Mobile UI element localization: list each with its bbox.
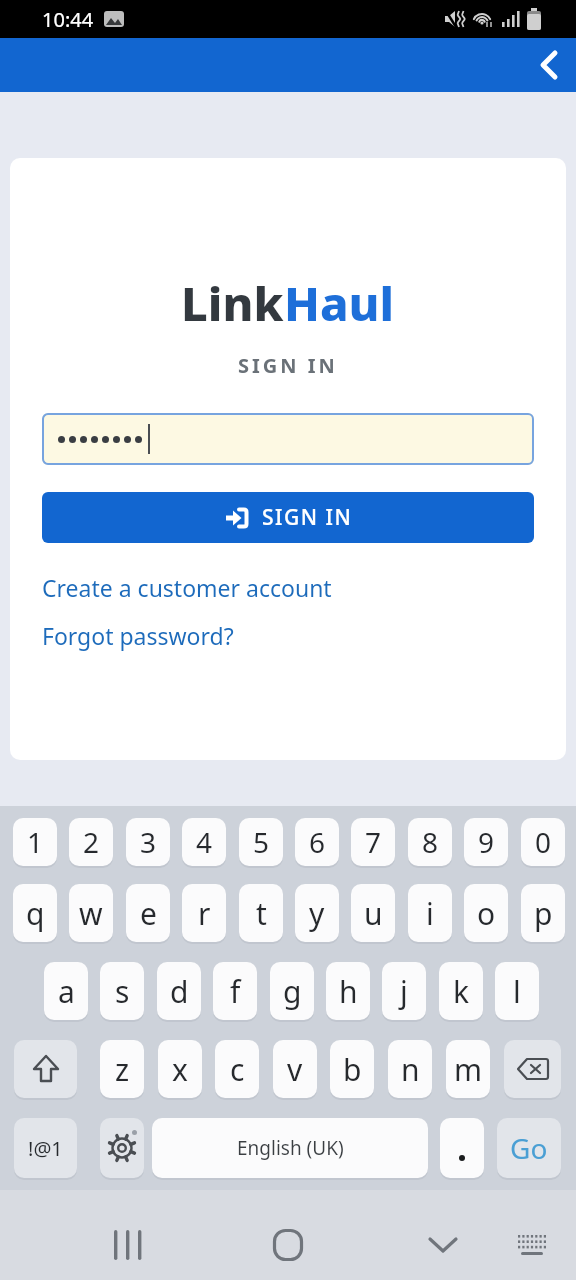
staticText: Forgot password? (42, 620, 234, 651)
staticText: y (309, 893, 325, 934)
button[interactable]: v (273, 1040, 317, 1098)
button[interactable]: 2 (69, 818, 113, 866)
staticText: c (230, 1049, 245, 1090)
button[interactable]: g (270, 962, 314, 1020)
staticText: i (426, 893, 434, 934)
staticText: n (401, 1049, 420, 1090)
staticText: 10:44 (42, 6, 94, 33)
button[interactable]: !@1 (14, 1118, 77, 1178)
button[interactable]: p (521, 884, 565, 942)
staticText: s (115, 971, 130, 1012)
button[interactable]: b (330, 1040, 374, 1098)
button[interactable]: o (464, 884, 508, 942)
button[interactable]: s (100, 962, 144, 1020)
staticText: 8 (422, 823, 439, 861)
staticText: 7 (365, 823, 382, 861)
button[interactable] (42, 413, 534, 465)
staticText: 2 (83, 823, 100, 861)
staticText: g (283, 971, 302, 1012)
button[interactable]: c (215, 1040, 259, 1098)
staticText: Haul (284, 271, 395, 335)
staticText: k (453, 971, 470, 1012)
staticText: 0 (535, 823, 552, 861)
button[interactable] (100, 1118, 144, 1178)
staticText: f (230, 971, 241, 1012)
staticText: e (140, 893, 157, 934)
staticText: b (343, 1049, 362, 1090)
button[interactable]: l (495, 962, 539, 1020)
staticText: SIGN IN (262, 503, 353, 532)
button[interactable]: a (44, 962, 88, 1020)
button[interactable]: x (158, 1040, 202, 1098)
staticText: 4 (196, 823, 213, 861)
button[interactable]: u (351, 884, 395, 942)
button[interactable]: m (446, 1040, 490, 1098)
button[interactable]: Forgot password? (42, 618, 234, 652)
button[interactable]: 7 (351, 818, 395, 866)
staticText: Create a customer account (42, 572, 332, 603)
button[interactable]: 3 (126, 818, 170, 866)
button[interactable]: d (157, 962, 201, 1020)
staticText: SIGN IN (238, 352, 338, 379)
button[interactable]: 9 (464, 818, 508, 866)
staticText: 9 (478, 823, 495, 861)
button[interactable] (14, 1040, 77, 1098)
button[interactable]: 1 (13, 818, 57, 866)
staticText: 1 (27, 823, 44, 861)
button[interactable] (100, 1217, 156, 1273)
button[interactable]: h (326, 962, 370, 1020)
button[interactable]: w (69, 884, 113, 942)
button[interactable]: Create a customer account (42, 570, 332, 604)
button[interactable] (504, 1040, 561, 1098)
staticText: 6 (309, 823, 326, 861)
staticText: h (339, 971, 358, 1012)
staticText: w (79, 893, 103, 934)
button[interactable]: 8 (408, 818, 452, 866)
staticText: Link (181, 271, 284, 335)
button[interactable]: k (439, 962, 483, 1020)
button[interactable] (440, 1118, 484, 1178)
staticText: t (256, 893, 267, 934)
staticText: v (287, 1049, 303, 1090)
button[interactable]: z (100, 1040, 144, 1098)
staticText: r (198, 893, 211, 934)
button[interactable]: e (126, 884, 170, 942)
staticText: z (115, 1049, 130, 1090)
staticText: English (UK) (237, 1135, 344, 1161)
button[interactable] (522, 38, 576, 92)
button[interactable] (508, 1222, 556, 1270)
button[interactable]: t (239, 884, 283, 942)
button[interactable] (260, 1217, 316, 1273)
button[interactable]: SIGN IN (42, 492, 534, 543)
button[interactable]: n (388, 1040, 432, 1098)
staticText: 5 (253, 823, 270, 861)
button[interactable] (415, 1217, 471, 1273)
staticText: a (58, 971, 75, 1012)
staticText: p (534, 893, 553, 934)
staticText: d (170, 971, 189, 1012)
button[interactable]: i (408, 884, 452, 942)
staticText: q (26, 893, 45, 934)
button[interactable]: f (213, 962, 257, 1020)
button[interactable]: 5 (239, 818, 283, 866)
button[interactable]: 4 (182, 818, 226, 866)
staticText: !@1 (28, 1135, 63, 1162)
button[interactable]: y (295, 884, 339, 942)
button[interactable]: 6 (295, 818, 339, 866)
button[interactable]: English (UK) (152, 1118, 428, 1178)
staticText: 3 (140, 823, 157, 861)
staticText: l (513, 971, 521, 1012)
button[interactable]: r (182, 884, 226, 942)
button[interactable]: q (13, 884, 57, 942)
staticText: u (364, 893, 383, 934)
button[interactable]: j (382, 962, 426, 1020)
staticText: Go (510, 1129, 548, 1167)
staticText: x (172, 1049, 188, 1090)
staticText: m (454, 1049, 483, 1090)
staticText: o (477, 893, 496, 934)
staticText: j (400, 971, 408, 1012)
button[interactable]: Go (497, 1118, 561, 1178)
button[interactable]: 0 (521, 818, 565, 866)
